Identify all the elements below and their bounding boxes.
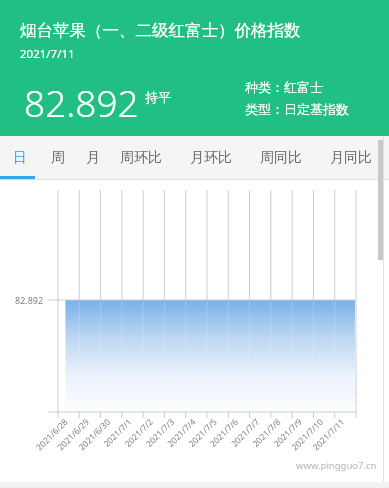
staticText: 持平 bbox=[145, 89, 171, 105]
staticText: 2021/7/11 bbox=[20, 46, 75, 62]
staticText: 种类：红富士 bbox=[245, 79, 323, 95]
button[interactable]: 月环比 bbox=[180, 136, 242, 180]
button[interactable]: 月同比 bbox=[320, 136, 382, 180]
staticText: 烟台苹果（一、二级红富士）价格指数 bbox=[20, 20, 301, 41]
staticText: 周同比 bbox=[260, 149, 302, 167]
button[interactable]: 月 bbox=[77, 136, 109, 180]
button[interactable]: 周环比 bbox=[110, 136, 172, 180]
staticText: 类型：日定基指数 bbox=[245, 101, 349, 117]
staticText: 周 bbox=[51, 149, 65, 167]
button[interactable]: 周同比 bbox=[250, 136, 312, 180]
staticText: 月 bbox=[86, 149, 100, 167]
staticText: 月同比 bbox=[330, 149, 372, 167]
staticText: 月环比 bbox=[190, 149, 232, 167]
button[interactable]: 周 bbox=[42, 136, 74, 180]
staticText: 日 bbox=[13, 149, 27, 167]
button[interactable]: 日 bbox=[4, 136, 36, 180]
staticText: 周环比 bbox=[120, 149, 162, 167]
staticText: 82.892 bbox=[24, 77, 139, 127]
